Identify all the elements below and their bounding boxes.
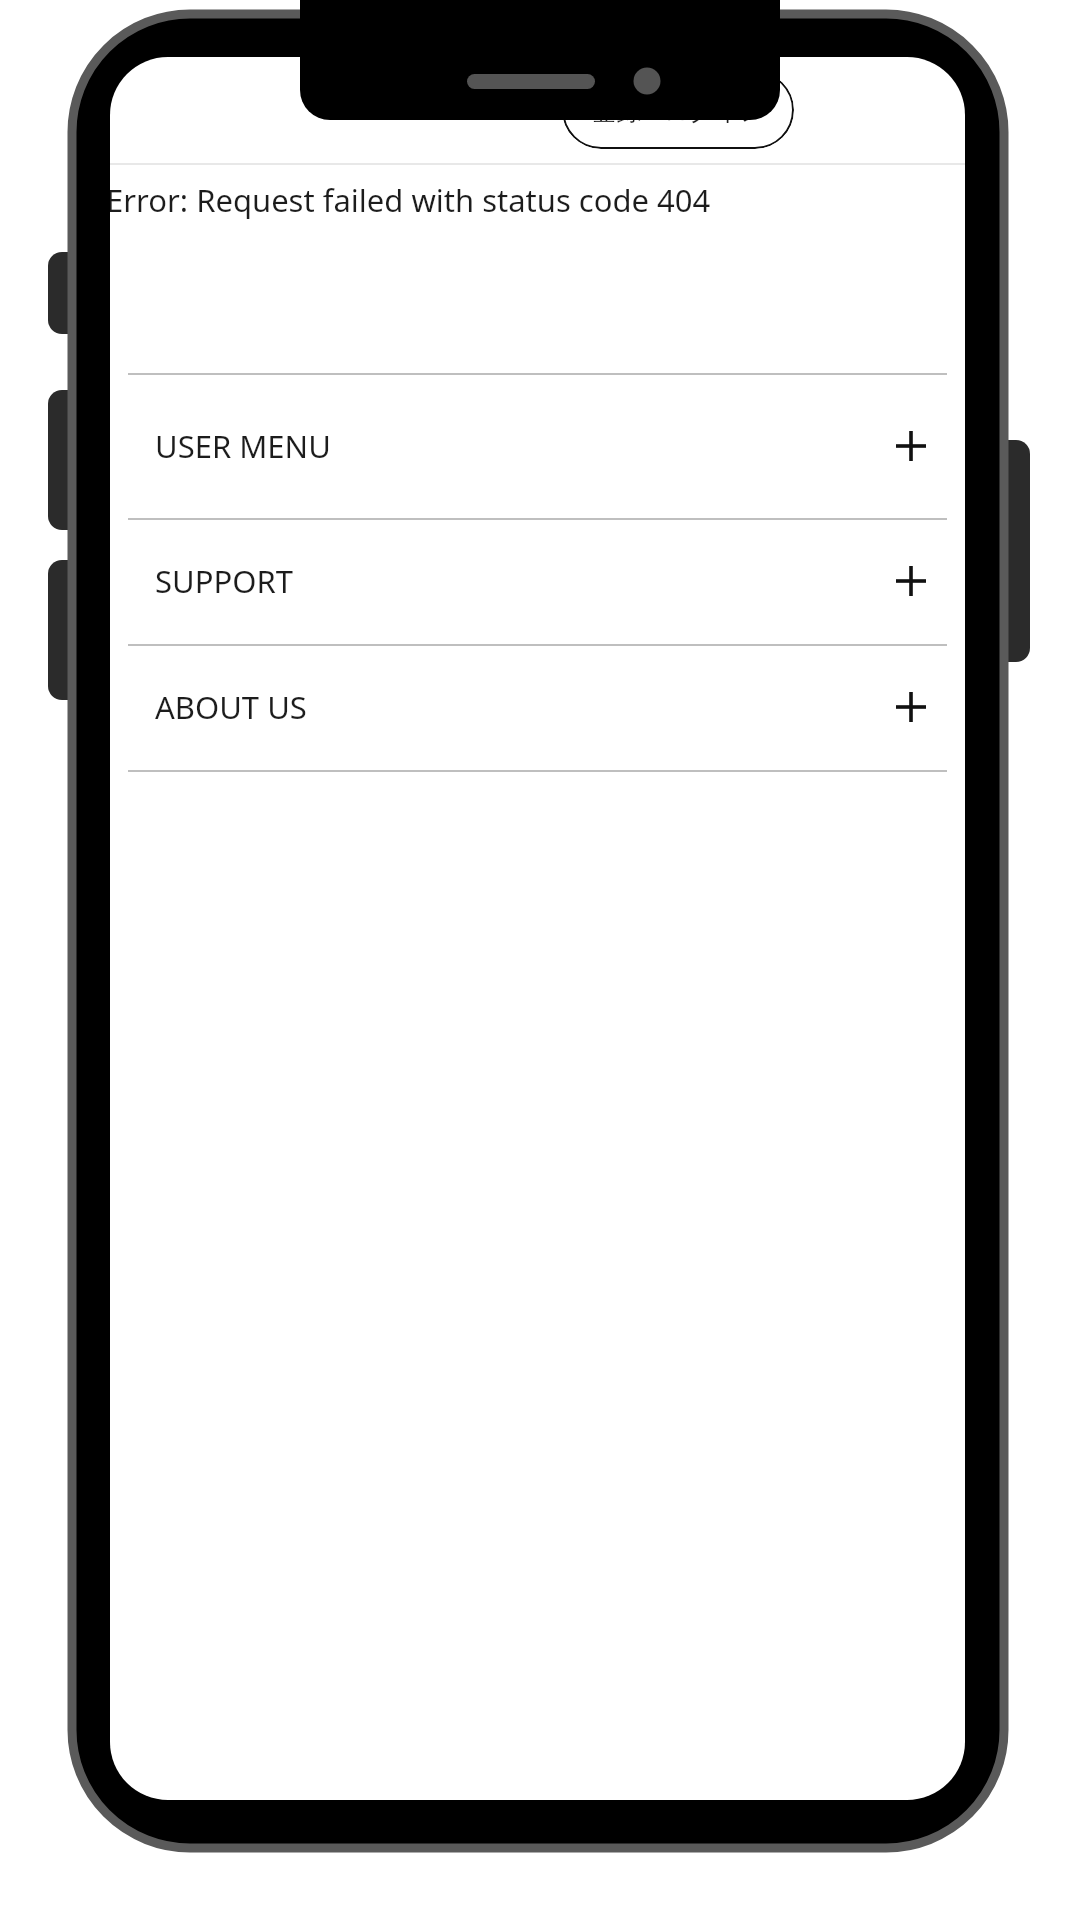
staticText: USER MENU bbox=[155, 425, 918, 467]
staticText: Error: Request failed with status code 4… bbox=[110, 179, 711, 221]
other: Expand USER MENU bbox=[883, 418, 939, 474]
other: Expand ABOUT US bbox=[883, 679, 939, 735]
button[interactable]: ABOUT US bbox=[128, 644, 947, 770]
button[interactable]: 登録 / ログイン bbox=[562, 71, 794, 149]
staticText: ABOUT US bbox=[155, 686, 918, 728]
other: Expand SUPPORT bbox=[883, 553, 939, 609]
button[interactable]: USER MENU bbox=[128, 373, 947, 518]
staticText: 登録 / ログイン bbox=[591, 93, 766, 127]
staticText: SUPPORT bbox=[155, 560, 918, 602]
button[interactable]: SUPPORT bbox=[128, 518, 947, 644]
